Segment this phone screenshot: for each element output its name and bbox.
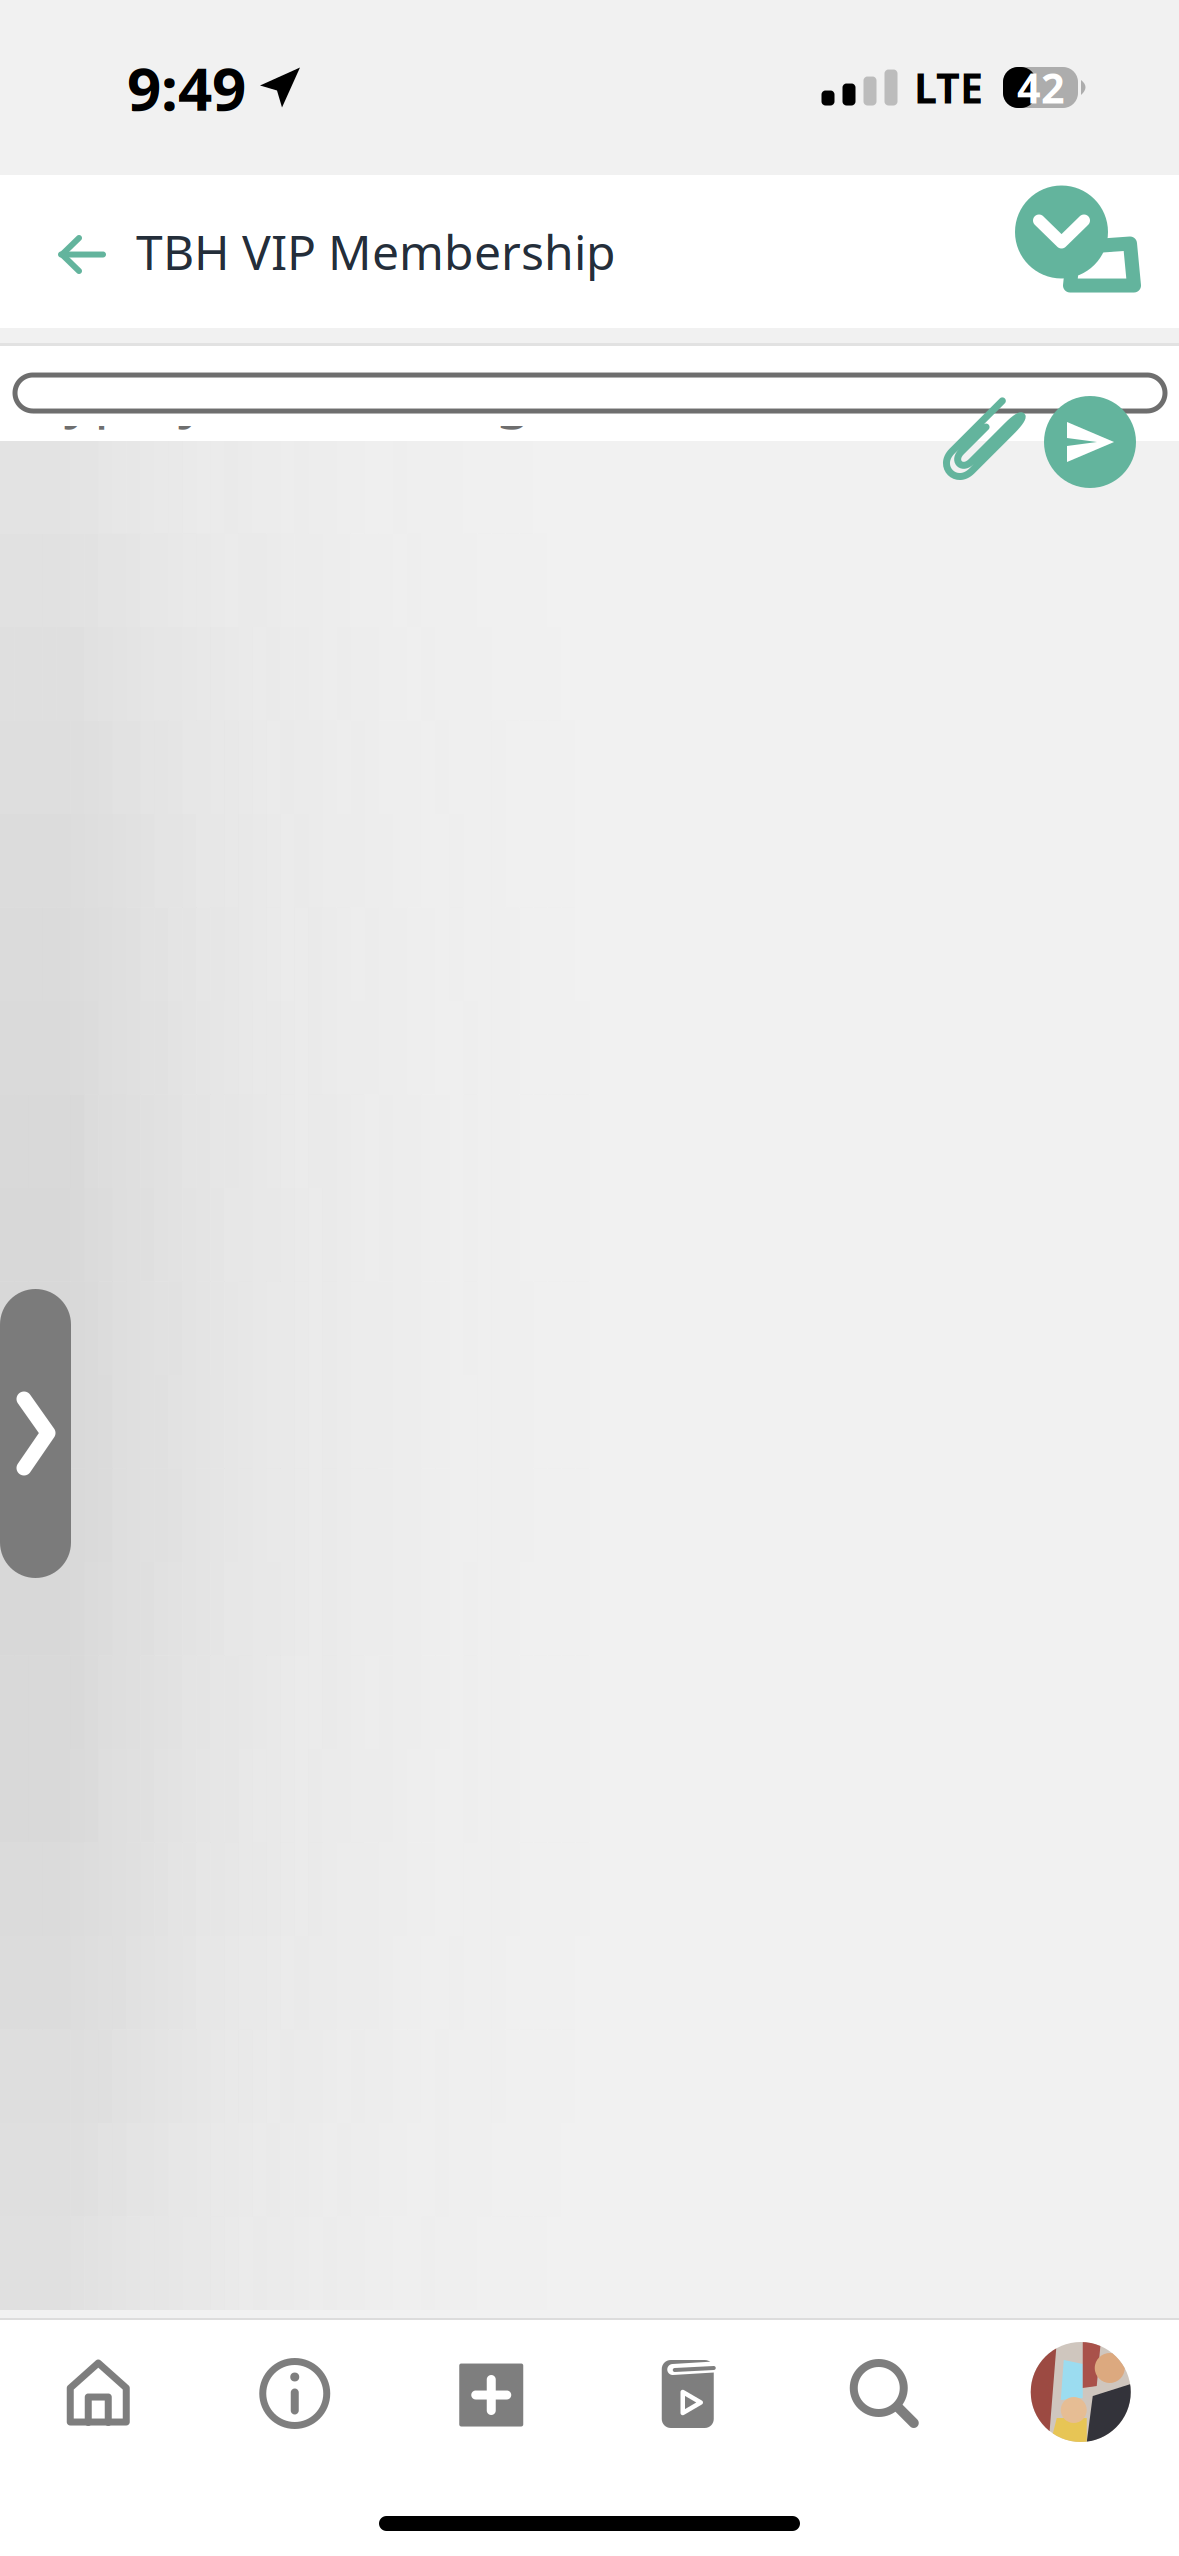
button[interactable]: Back xyxy=(0,175,136,328)
staticText: LTE xyxy=(914,60,983,115)
staticText: 42 xyxy=(1017,60,1065,115)
button[interactable]: Home xyxy=(0,2320,196,2470)
button[interactable]: Create post xyxy=(393,2320,589,2470)
button[interactable]: Library xyxy=(589,2320,786,2470)
button[interactable]: Search xyxy=(786,2320,982,2470)
staticText: 9:49 xyxy=(127,48,246,127)
button[interactable]: Profile xyxy=(982,2320,1179,2470)
button[interactable]: Attach file xyxy=(944,403,1016,481)
staticText: TBH VIP Membership xyxy=(136,220,616,283)
staticText: Type your message xyxy=(33,354,564,432)
button[interactable]: Open side panel xyxy=(0,1289,71,1578)
button[interactable]: Present xyxy=(1008,175,1179,328)
button[interactable]: Information xyxy=(196,2320,393,2470)
button[interactable]: Send xyxy=(1016,396,1179,488)
